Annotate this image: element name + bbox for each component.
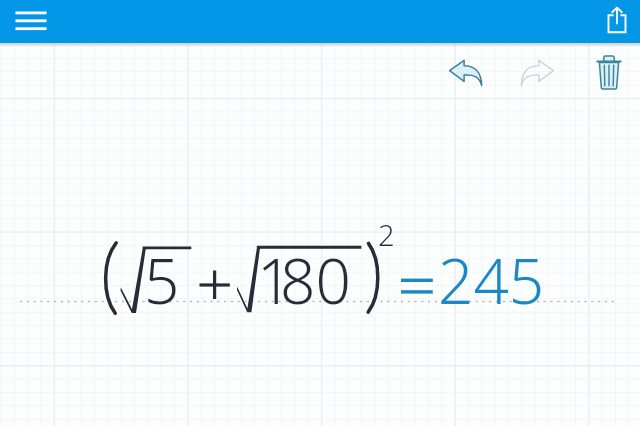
button[interactable]: Undo [447,52,486,88]
staticText: 5 [144,238,180,322]
staticText: 80 [280,238,351,322]
staticText: 2 [378,215,395,255]
staticText: 1 [257,238,293,322]
button[interactable]: Delete [587,47,631,91]
button[interactable]: Menu [9,0,53,43]
staticText: 245 [438,238,545,322]
button[interactable]: Share [595,0,639,43]
button[interactable]: Redo [517,52,556,88]
